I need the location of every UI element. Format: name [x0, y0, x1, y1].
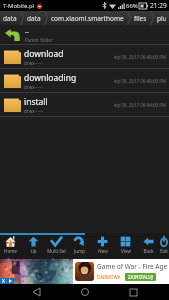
- staticText: com.xiaomi.smarthome: [51, 14, 124, 23]
- staticText: data: [27, 14, 41, 23]
- staticText: 66%: [126, 2, 138, 10]
- staticText: Back: [143, 248, 154, 254]
- staticText: Parent folder: [25, 37, 53, 43]
- button[interactable]: Back: [137, 235, 160, 259]
- staticText: Jump: [74, 248, 85, 254]
- staticText: View: [121, 248, 131, 254]
- button[interactable]: files: [131, 11, 150, 25]
- staticText: T-Mobile.pl: [3, 2, 35, 10]
- staticText: drwx------: [24, 84, 44, 90]
- button[interactable]: Multi-Sel: [45, 235, 68, 259]
- button[interactable]: ZAINSTALUJ: [128, 274, 153, 280]
- staticText: ZAINSTALUJ: [128, 274, 153, 280]
- button[interactable]: com.xiaomi.smarthome: [48, 11, 127, 25]
- staticText: Multi-Sel: [47, 248, 66, 254]
- button[interactable]: Home: [0, 235, 22, 259]
- staticText: data: [3, 14, 17, 23]
- button[interactable]: Recent apps: [121, 284, 145, 300]
- button[interactable]: Up: [22, 235, 45, 259]
- button[interactable]: ..: [0, 25, 169, 44]
- staticText: Up: [30, 248, 37, 254]
- staticText: plugin: [157, 14, 166, 23]
- staticText: New: [98, 248, 108, 254]
- button[interactable]: Home: [73, 284, 97, 300]
- button[interactable]: New: [91, 235, 114, 259]
- button[interactable]: View: [114, 235, 137, 259]
- button[interactable]: Ad choices: [7, 278, 14, 284]
- button[interactable]: Exit: [160, 235, 168, 259]
- staticText: sty 09, 2017 09:44:00 PM: [114, 102, 167, 108]
- staticText: X: [2, 278, 5, 284]
- staticText: install: [24, 96, 48, 108]
- staticText: drwx------: [24, 108, 44, 114]
- button[interactable]: install: [0, 93, 169, 116]
- button[interactable]: Close ad: [0, 278, 7, 284]
- staticText: sty 09, 2017 09:46:00 PM: [114, 78, 167, 84]
- button[interactable]: data: [0, 11, 20, 25]
- staticText: sty 09, 2017 09:46:00 PM: [114, 54, 167, 60]
- button[interactable]: Back: [24, 284, 48, 300]
- staticText: download: [24, 48, 64, 60]
- staticText: ..: [25, 26, 29, 36]
- button[interactable]: plugin: [154, 11, 169, 25]
- staticText: files: [134, 14, 147, 23]
- staticText: Game of War - Fire Age: [97, 262, 168, 271]
- button[interactable]: Close ad: [0, 259, 169, 284]
- staticText: Home: [4, 248, 17, 254]
- staticText: downloading: [24, 72, 77, 84]
- button[interactable]: download: [0, 45, 169, 68]
- button[interactable]: downloading: [0, 69, 169, 92]
- staticText: DARMOWA: [97, 274, 121, 280]
- button[interactable]: Jump: [68, 235, 91, 259]
- staticText: 21:29: [150, 1, 167, 10]
- button[interactable]: data: [24, 11, 44, 25]
- staticText: Exit: [160, 248, 168, 254]
- staticText: drwx------: [24, 60, 44, 66]
